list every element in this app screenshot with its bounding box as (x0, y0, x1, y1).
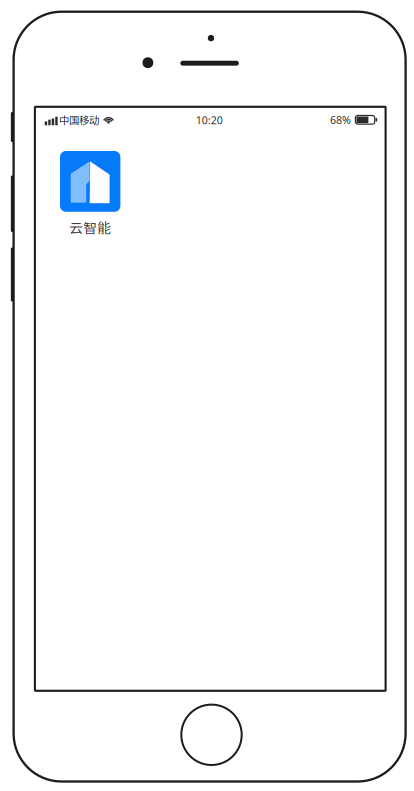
staticText: 云智能 (69, 217, 111, 237)
staticText: 10:20 (196, 113, 223, 127)
staticText: 中国移动 (59, 112, 99, 127)
button[interactable]: 云智能 (60, 151, 120, 237)
staticText: 68% (330, 113, 351, 127)
